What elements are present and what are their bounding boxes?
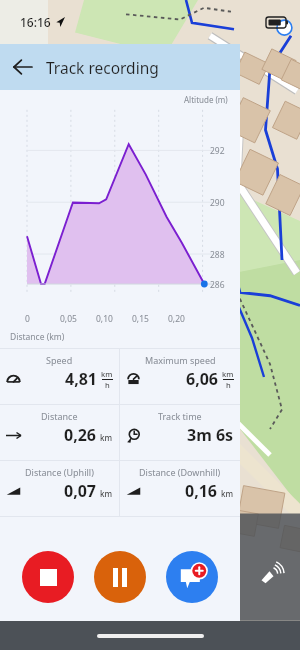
staticText: km	[100, 488, 113, 499]
button[interactable]: Maximum speed	[120, 349, 240, 404]
staticText: Speed	[46, 354, 73, 366]
staticText: 0,20	[168, 313, 204, 325]
staticText: h	[226, 380, 231, 390]
button[interactable]: Speed	[0, 349, 119, 404]
staticText: 0,07	[64, 480, 97, 502]
staticText: 292	[210, 145, 225, 157]
button[interactable]: Distance (Uphill)	[0, 461, 119, 516]
button[interactable]: Track time	[120, 405, 240, 460]
staticText: 4,81	[65, 368, 98, 390]
staticText: 288	[210, 249, 225, 261]
staticText: Maximum speed	[145, 354, 216, 366]
staticText: h	[105, 380, 110, 390]
staticText: 3m 6s	[187, 424, 234, 446]
staticText: km	[101, 369, 113, 379]
staticText: km	[222, 369, 234, 379]
button[interactable]: Stop recording	[22, 551, 74, 603]
staticText: Altitude (m)	[184, 94, 228, 105]
staticText: Distance (Downhill)	[139, 466, 221, 478]
button[interactable]: Back	[0, 44, 46, 90]
staticText: 0,16	[185, 480, 218, 502]
staticText: Distance (Uphill)	[25, 466, 94, 478]
staticText: 16:16	[20, 14, 51, 30]
staticText: Distance (km)	[10, 331, 65, 343]
staticText: Track time	[158, 410, 202, 422]
staticText: km	[221, 488, 234, 499]
staticText: 0,10	[96, 313, 132, 325]
button[interactable]: Add waypoint	[166, 551, 218, 603]
button[interactable]: Distance (Downhill)	[120, 461, 240, 516]
staticText: 0,26	[64, 424, 97, 446]
staticText: 0	[25, 313, 60, 325]
staticText: km	[100, 432, 113, 443]
staticText: 0,05	[60, 313, 96, 325]
staticText: 286	[210, 279, 225, 291]
staticText: Distance	[41, 410, 78, 422]
staticText: 6,06	[186, 368, 219, 390]
button[interactable]: Distance	[0, 405, 119, 460]
button[interactable]: Pause recording	[94, 551, 146, 603]
staticText: Track recording	[46, 57, 159, 78]
staticText: 290	[210, 197, 225, 209]
staticText: 0,15	[132, 313, 168, 325]
